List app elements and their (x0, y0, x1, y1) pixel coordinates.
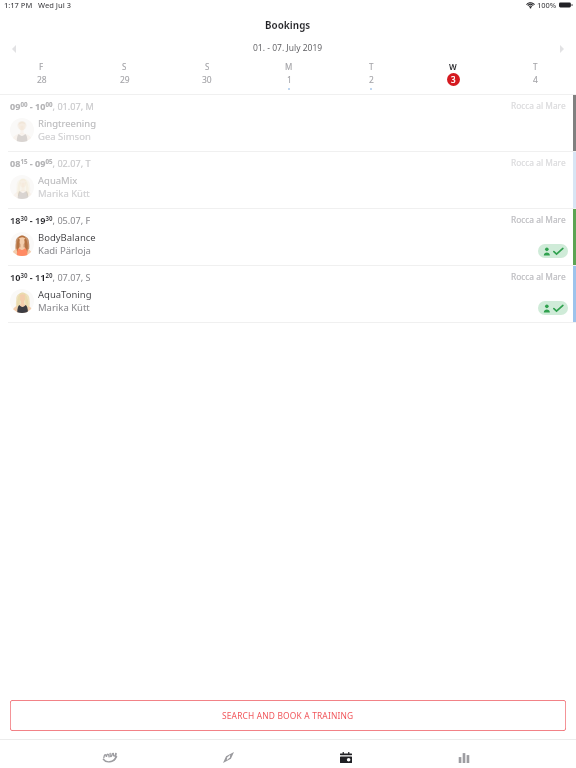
staticText: AquaToning (38, 288, 92, 301)
staticText: Marika Kütt (38, 301, 90, 314)
button[interactable]: Booked (538, 244, 568, 258)
button[interactable]: Next week (556, 43, 568, 55)
staticText: 2 (369, 74, 374, 86)
button[interactable]: 1030 - 1120, 07.07, S (0, 266, 576, 323)
staticText: SEARCH AND BOOK A TRAINING (222, 710, 354, 721)
staticText: 1:17 PM (4, 0, 33, 10)
staticText: S (122, 61, 127, 72)
staticText: 3 (451, 74, 456, 85)
staticText: 29 (120, 74, 130, 86)
button[interactable]: W (412, 59, 494, 94)
button[interactable]: 1830 - 1930, 05.07, F (0, 209, 576, 266)
button[interactable]: 0900 - 1000, 01.07, M (0, 95, 576, 152)
button[interactable]: T (330, 59, 412, 94)
button[interactable]: Booked (538, 301, 568, 315)
staticText: 1030 - 1120, 07.07, S (10, 271, 91, 283)
staticText: 4 (533, 74, 538, 86)
staticText: S (205, 61, 210, 72)
button[interactable]: Statistics (405, 746, 523, 768)
staticText: Wed Jul 3 (38, 0, 71, 10)
staticText: 0815 - 0905, 02.07, T (10, 157, 91, 169)
staticText: AquaMix (38, 174, 78, 187)
button[interactable]: S (83, 59, 166, 94)
button[interactable]: S (166, 59, 248, 94)
staticText: Ringtreening (38, 117, 96, 130)
staticText: 0900 - 1000, 01.07, M (10, 100, 94, 112)
staticText: Bookings (265, 19, 311, 32)
button[interactable]: M (248, 59, 330, 94)
staticText: Rocca al Mare (511, 214, 566, 225)
staticText: Rocca al Mare (511, 271, 566, 282)
staticText: 01. - 07. July 2019 (253, 42, 323, 54)
staticText: Rocca al Mare (511, 157, 566, 168)
staticText: 1830 - 1930, 05.07, F (10, 214, 91, 226)
button[interactable]: Previous week (8, 43, 20, 55)
staticText: Rocca al Mare (511, 100, 566, 111)
button[interactable]: T (494, 59, 576, 94)
button[interactable]: F (0, 59, 83, 94)
button[interactable]: My (53, 746, 170, 768)
staticText: T (369, 61, 374, 72)
button[interactable]: Explore (170, 746, 287, 768)
staticText: W (449, 61, 457, 72)
staticText: 1 (287, 74, 292, 86)
staticText: Marika Kütt (38, 187, 90, 200)
button[interactable]: SEARCH AND BOOK A TRAINING (10, 700, 566, 731)
staticText: 100% (537, 0, 557, 10)
staticText: F (39, 61, 44, 72)
staticText: BodyBalance (38, 231, 96, 244)
button[interactable]: Bookings (287, 746, 405, 768)
staticText: M (285, 61, 293, 72)
staticText: Gea Simson (38, 130, 91, 143)
button[interactable]: 0815 - 0905, 02.07, T (0, 152, 576, 209)
staticText: 28 (37, 74, 47, 86)
staticText: 30 (202, 74, 212, 86)
staticText: T (533, 61, 538, 72)
staticText: Kadi Pärloja (38, 244, 91, 257)
